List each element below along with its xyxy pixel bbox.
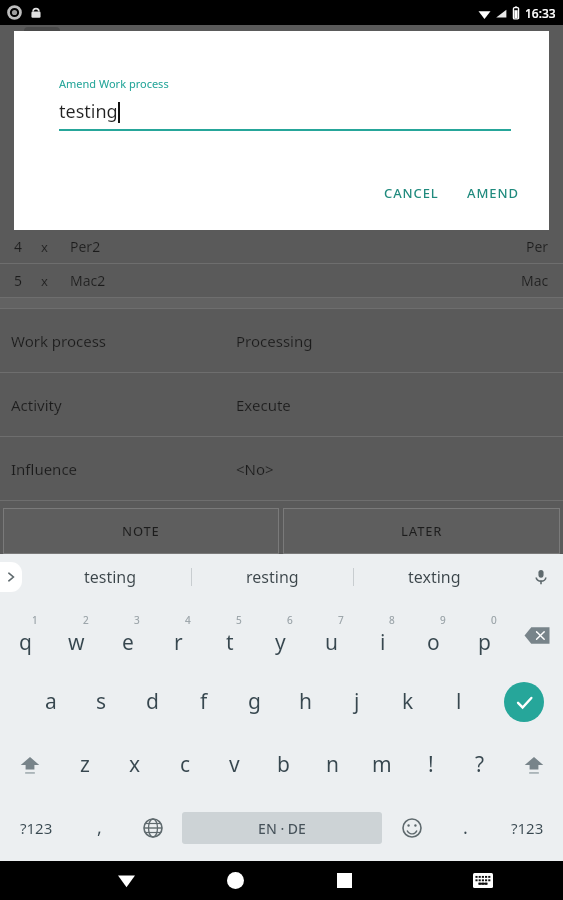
staticText: Mac2 [70, 271, 106, 290]
staticText: w [68, 628, 85, 657]
button[interactable]: 2 [51, 600, 102, 670]
button[interactable]: Expand suggestions [0, 562, 22, 592]
button[interactable]: Work process [0, 309, 563, 372]
staticText: p [478, 628, 491, 657]
button[interactable]: 1 [0, 600, 51, 670]
button[interactable]: texting [354, 554, 515, 600]
button[interactable]: resting [192, 554, 353, 600]
button[interactable]: Enter [484, 670, 563, 733]
staticText: b [277, 750, 290, 779]
staticText: r [174, 628, 183, 657]
staticText: q [19, 628, 32, 657]
button[interactable]: s [76, 670, 127, 733]
staticText: a [45, 687, 57, 716]
button[interactable]: l [433, 670, 484, 733]
staticText: LATER [401, 522, 443, 540]
staticText: , [97, 815, 102, 840]
button[interactable]: 7 [306, 600, 357, 670]
button[interactable]: Backspace [510, 600, 563, 670]
staticText: texting [408, 566, 461, 588]
staticText: ? [475, 750, 485, 779]
button[interactable]: 5 [204, 600, 255, 670]
staticText: y [275, 628, 286, 657]
staticText: x [41, 238, 48, 256]
button[interactable]: NOTE [3, 508, 279, 554]
button[interactable]: b [259, 733, 308, 796]
button[interactable]: m [357, 733, 406, 796]
button[interactable]: Home [193, 861, 277, 900]
staticText: Work process [11, 331, 236, 351]
staticText: h [299, 687, 312, 716]
button[interactable]: . [439, 796, 491, 859]
staticText: Influence [11, 459, 236, 479]
staticText: Mac [521, 271, 549, 290]
button[interactable]: Change language [125, 796, 180, 859]
button[interactable]: ? [455, 733, 504, 796]
button[interactable]: j [331, 670, 382, 733]
staticText: 8 [389, 613, 395, 627]
button[interactable]: 8 [357, 600, 408, 670]
button[interactable]: Shift [0, 733, 60, 796]
staticText: Per [526, 237, 549, 256]
staticText: i [380, 628, 386, 657]
button[interactable]: n [308, 733, 357, 796]
staticText: NOTE [122, 522, 160, 540]
button[interactable]: f [178, 670, 229, 733]
button[interactable]: 6 [255, 600, 306, 670]
button[interactable]: z [60, 733, 110, 796]
button[interactable]: v [210, 733, 259, 796]
button[interactable]: ! [406, 733, 455, 796]
button[interactable]: Influence [0, 437, 563, 500]
button[interactable]: k [382, 670, 433, 733]
button[interactable]: EN · DE [182, 812, 382, 844]
button[interactable]: a [25, 670, 76, 733]
button[interactable]: testing [30, 554, 191, 600]
staticText: z [80, 750, 90, 779]
button[interactable]: h [280, 670, 331, 733]
staticText: Processing [236, 331, 313, 351]
button[interactable]: Activity [0, 373, 563, 436]
button[interactable]: testing [59, 99, 120, 124]
button[interactable]: 4 [153, 600, 204, 670]
staticText: 5 [236, 613, 242, 627]
button[interactable]: LATER [283, 508, 560, 554]
staticText: 4 [14, 237, 23, 256]
button[interactable]: Recent apps [302, 861, 386, 900]
staticText: Per2 [70, 237, 101, 256]
staticText: resting [246, 566, 299, 588]
button[interactable]: Switch keyboard [441, 861, 525, 900]
button[interactable]: x [110, 733, 160, 796]
button[interactable]: d [127, 670, 178, 733]
staticText: 7 [338, 613, 344, 627]
button[interactable]: 0 [459, 600, 510, 670]
button[interactable]: 5 [0, 264, 563, 297]
button[interactable]: g [229, 670, 280, 733]
staticText: 2 [83, 613, 89, 627]
staticText: 1 [32, 613, 38, 627]
staticText: testing [84, 566, 137, 588]
button[interactable]: AMEND [459, 178, 527, 208]
button[interactable]: 3 [102, 600, 153, 670]
staticText: 5 [14, 271, 23, 290]
button[interactable]: Emoji [384, 796, 439, 859]
button[interactable]: Voice input [519, 555, 563, 599]
button[interactable]: ?123 [491, 796, 563, 859]
button[interactable]: , [73, 796, 125, 859]
button[interactable]: CANCEL [376, 178, 447, 208]
button[interactable]: c [160, 733, 210, 796]
button[interactable]: Hide keyboard [84, 861, 168, 900]
button[interactable]: ?123 [0, 796, 73, 859]
staticText: e [122, 628, 134, 657]
staticText: k [402, 687, 414, 716]
button[interactable]: 9 [408, 600, 459, 670]
staticText: Activity [11, 395, 236, 415]
staticText: g [248, 687, 261, 716]
staticText: 4 [185, 613, 191, 627]
button[interactable]: 4 [0, 230, 563, 263]
staticText: u [325, 628, 338, 657]
button[interactable]: Shift [504, 733, 563, 796]
staticText: 9 [440, 613, 446, 627]
staticText: 0 [491, 613, 497, 627]
staticText: 3 [134, 613, 140, 627]
staticText: c [180, 750, 191, 779]
